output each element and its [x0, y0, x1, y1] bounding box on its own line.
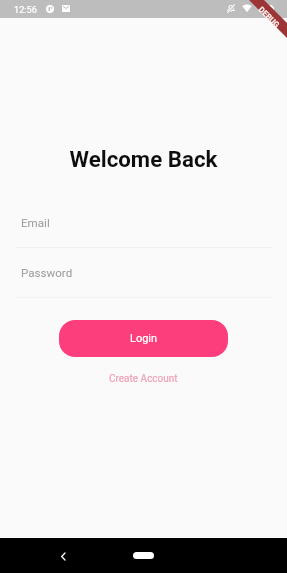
- staticText: Welcome Back: [0, 146, 287, 172]
- button[interactable]: Login: [59, 320, 228, 357]
- button[interactable]: Password: [0, 248, 287, 297]
- staticText: Login: [130, 332, 158, 345]
- button[interactable]: Create Account: [101, 370, 186, 388]
- button[interactable]: Back: [51, 544, 75, 568]
- button[interactable]: Home: [133, 552, 154, 559]
- staticText: 12:56: [14, 4, 37, 15]
- button[interactable]: Email: [0, 198, 287, 247]
- staticText: Email: [21, 216, 50, 230]
- staticText: Create Account: [109, 373, 178, 385]
- staticText: DEBUG: [257, 5, 281, 30]
- staticText: Password: [21, 266, 73, 280]
